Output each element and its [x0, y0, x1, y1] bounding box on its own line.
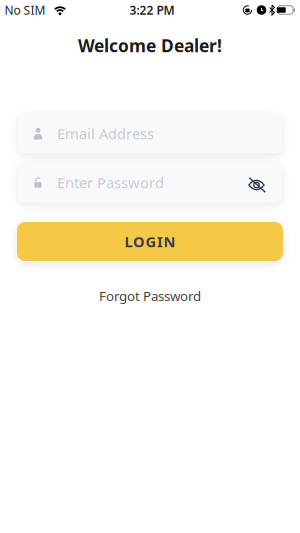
staticText: Welcome Dealer!: [78, 34, 222, 57]
staticText: Email Address: [57, 124, 154, 143]
staticText: Enter Password: [57, 173, 164, 192]
button[interactable]: LOGIN: [17, 222, 283, 261]
staticText: 3:22 PM: [129, 2, 174, 18]
button[interactable]: Email Address: [18, 113, 282, 153]
staticText: No SIM: [4, 2, 45, 18]
staticText: LOGIN: [124, 232, 175, 251]
button[interactable]: Forgot Password: [99, 287, 201, 305]
button[interactable]: [248, 176, 265, 188]
staticText: Forgot Password: [99, 287, 201, 305]
button[interactable]: Enter Password: [18, 162, 282, 202]
